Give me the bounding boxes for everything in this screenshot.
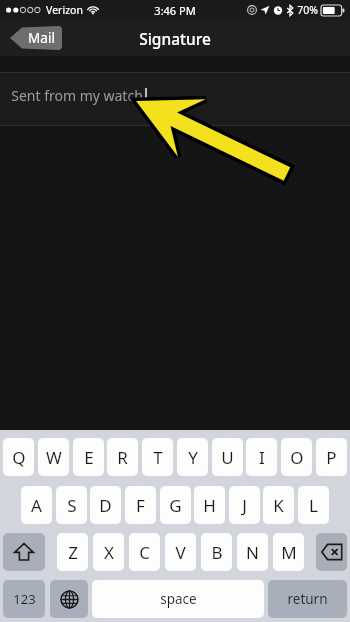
staticText: return [287, 590, 328, 608]
staticText: H [203, 494, 216, 517]
button[interactable]: Q [3, 438, 34, 476]
staticText: space [160, 590, 197, 608]
staticText: J [242, 494, 247, 517]
staticText: F [136, 494, 145, 517]
staticText: V [175, 541, 186, 564]
button[interactable]: Change keyboard [50, 580, 88, 618]
staticText: I [259, 446, 265, 469]
staticText: E [84, 446, 94, 469]
button[interactable]: Mail [10, 26, 62, 50]
staticText: N [246, 541, 259, 564]
button[interactable]: E [73, 438, 104, 476]
button[interactable]: K [263, 486, 294, 524]
button[interactable]: W [38, 438, 69, 476]
button[interactable]: I [246, 438, 277, 476]
button[interactable]: M [273, 533, 304, 571]
button[interactable]: D [90, 486, 121, 524]
staticText: L [309, 494, 318, 517]
button[interactable]: Y [177, 438, 208, 476]
button[interactable]: T [142, 438, 173, 476]
staticText: Y [188, 446, 198, 469]
button[interactable]: J [229, 486, 260, 524]
button[interactable]: G [160, 486, 191, 524]
staticText: M [281, 541, 297, 564]
button[interactable]: F [125, 486, 156, 524]
button[interactable]: B [201, 533, 232, 571]
button[interactable]: S [56, 486, 87, 524]
staticText: Verizon [46, 3, 83, 17]
staticText: X [104, 541, 114, 564]
staticText: 3:46 PM [154, 3, 196, 18]
staticText: P [326, 446, 337, 469]
button[interactable]: U [212, 438, 243, 476]
staticText: Signature [139, 28, 211, 49]
button[interactable]: 123 [3, 580, 45, 618]
staticText: 70% [297, 3, 318, 17]
staticText: O [290, 446, 304, 469]
staticText: Mail [28, 29, 55, 47]
button[interactable]: C [129, 533, 160, 571]
staticText: C [139, 541, 150, 564]
staticText: G [169, 494, 182, 517]
button[interactable]: A [21, 486, 52, 524]
button[interactable]: R [107, 438, 138, 476]
button[interactable]: Z [57, 533, 88, 571]
staticText: T [153, 446, 163, 469]
staticText: Z [68, 541, 78, 564]
button[interactable]: return [268, 580, 347, 618]
button[interactable]: N [237, 533, 268, 571]
staticText: Q [12, 446, 26, 469]
staticText: B [211, 541, 223, 564]
button[interactable]: Delete [316, 533, 347, 571]
staticText: D [99, 494, 112, 517]
button[interactable]: P [316, 438, 347, 476]
staticText: A [31, 494, 42, 517]
staticText: W [46, 446, 62, 469]
button[interactable]: L [298, 486, 329, 524]
button[interactable]: space [92, 580, 264, 618]
button[interactable]: Shift [3, 533, 45, 571]
button[interactable]: Sent from my watch [0, 73, 350, 125]
button[interactable]: H [194, 486, 225, 524]
staticText: Sent from my watch [11, 86, 143, 105]
button[interactable]: X [93, 533, 124, 571]
staticText: R [117, 446, 128, 469]
button[interactable]: V [165, 533, 196, 571]
staticText: K [273, 494, 284, 517]
button[interactable]: O [281, 438, 312, 476]
staticText: 123 [13, 590, 36, 608]
staticText: U [221, 446, 234, 469]
staticText: S [67, 494, 77, 517]
